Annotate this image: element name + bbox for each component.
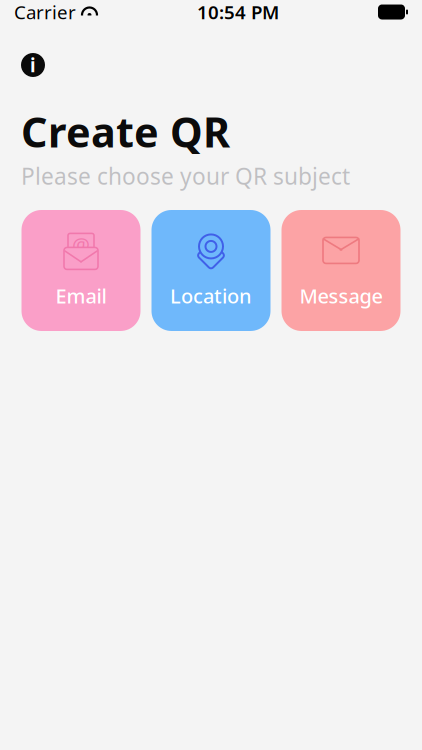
staticText: Carrier xyxy=(14,0,76,24)
button[interactable]: Location xyxy=(151,210,270,331)
staticText: 10:54 PM xyxy=(197,0,279,24)
button[interactable]: Information xyxy=(16,48,50,82)
staticText: @ xyxy=(72,231,90,258)
button[interactable]: Message xyxy=(281,210,400,331)
button[interactable]: @ xyxy=(21,210,140,331)
staticText: Create QR xyxy=(21,104,230,159)
staticText: Message xyxy=(299,282,382,309)
staticText: i xyxy=(30,53,36,77)
staticText: Please choose your QR subject xyxy=(21,161,350,191)
staticText: Email xyxy=(55,282,106,309)
staticText: Location xyxy=(170,282,252,309)
